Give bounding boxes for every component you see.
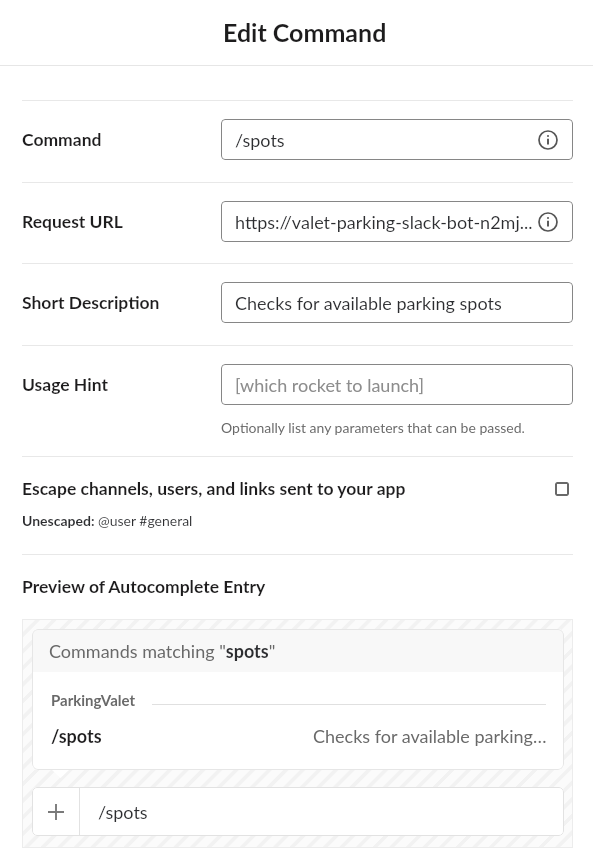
button[interactable]: Escape channels checkbox [555,482,569,496]
staticText: Optionally list any parameters that can … [221,419,525,436]
staticText: /spots [98,801,148,823]
staticText: ParkingValet [51,691,135,709]
staticText: Command [22,129,221,150]
staticText: Preview of Autocomplete Entry [22,576,266,597]
button[interactable]: Checks for available parking spots [221,282,573,323]
button[interactable]: /spots [221,119,573,160]
staticText: Edit Command [223,17,387,47]
staticText: Checks for available parking spots [235,292,502,314]
button[interactable]: [which rocket to launch] [221,364,573,405]
button[interactable]: /spots [51,725,547,747]
button[interactable]: Add attachment [32,787,79,836]
button[interactable]: More info [538,212,558,232]
button[interactable]: More info [538,130,558,150]
staticText: /spots [51,725,102,747]
staticText: Request URL [22,211,221,232]
staticText: https://valet-parking-slack-bot-n2mj... [235,211,533,233]
staticText: /spots [235,129,285,151]
staticText: Short Description [22,292,221,313]
button[interactable]: https://valet-parking-slack-bot-n2mj... [221,201,573,242]
staticText: Commands matching "spots" [49,640,276,662]
staticText: [which rocket to launch] [235,374,425,396]
staticText: Checks for available parking… [313,725,547,747]
staticText: Usage Hint [22,374,221,395]
staticText: Unescaped: @user #general [22,512,193,529]
staticText: Escape channels, users, and links sent t… [22,478,555,499]
